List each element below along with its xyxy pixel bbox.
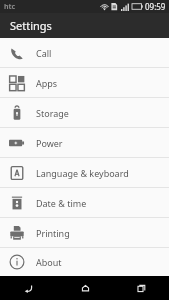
staticText: Storage bbox=[36, 107, 69, 119]
staticText: htc bbox=[4, 2, 16, 12]
staticText: About bbox=[36, 256, 62, 268]
button[interactable]: Call bbox=[0, 38, 169, 67]
staticText: Date & time bbox=[36, 197, 87, 209]
staticText: Call bbox=[36, 47, 52, 59]
button[interactable]: Printing bbox=[0, 218, 169, 247]
staticText: Settings bbox=[10, 18, 52, 33]
button[interactable]: Back bbox=[0, 276, 57, 300]
staticText: Printing bbox=[36, 227, 70, 239]
staticText: Apps bbox=[36, 77, 58, 89]
staticText: 09:59 bbox=[145, 1, 166, 12]
button[interactable]: Storage bbox=[0, 98, 169, 127]
button[interactable]: Power bbox=[0, 128, 169, 157]
button[interactable]: Language & keyboard bbox=[0, 158, 169, 187]
button[interactable]: Home bbox=[57, 276, 113, 300]
button[interactable]: Recent apps bbox=[113, 276, 169, 300]
staticText: Language & keyboard bbox=[36, 167, 129, 179]
staticText: Power bbox=[36, 137, 63, 149]
button[interactable]: Apps bbox=[0, 68, 169, 97]
button[interactable]: Date & time bbox=[0, 188, 169, 217]
button[interactable]: About bbox=[0, 248, 169, 276]
